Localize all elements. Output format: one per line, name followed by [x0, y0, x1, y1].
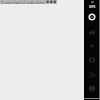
- button[interactable]: Volume: [87, 27, 97, 37]
- button[interactable]: GPS location: [86, 0, 98, 8]
- button[interactable]: Power: [87, 12, 97, 22]
- button[interactable]: Network: [87, 70, 97, 80]
- button[interactable]: Screenshot: [87, 55, 97, 65]
- button[interactable]: Rotate: [87, 41, 97, 51]
- button[interactable]: Messages: [87, 84, 97, 94]
- staticText: GPS: [89, 4, 96, 8]
- staticText: ExpandableListActivity: [1, 0, 45, 4]
